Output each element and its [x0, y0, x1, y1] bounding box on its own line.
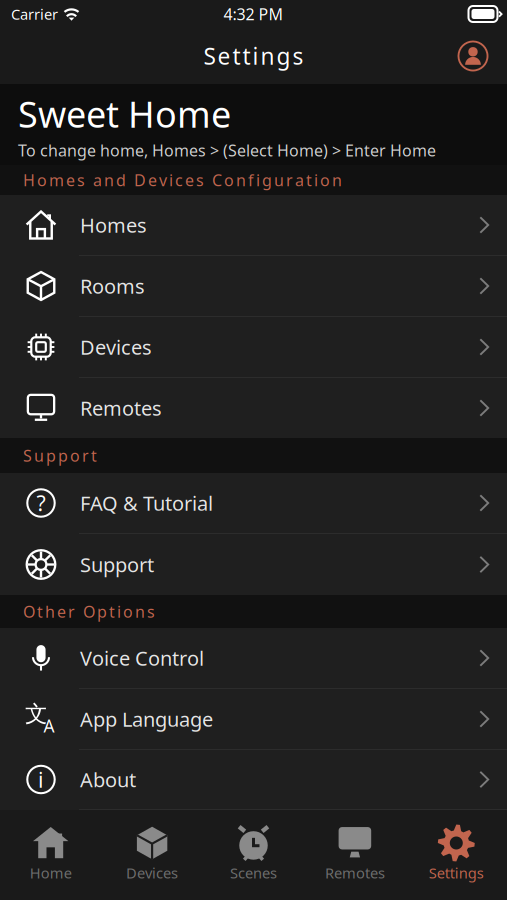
- button[interactable]: Homes: [0, 195, 507, 255]
- staticText: S u p p o r t: [23, 445, 97, 466]
- button[interactable]: Account: [458, 41, 488, 71]
- button[interactable]: Settings: [406, 810, 507, 900]
- staticText: A: [43, 714, 54, 737]
- staticText: Devices: [80, 334, 152, 360]
- button[interactable]: Home: [0, 810, 101, 900]
- button[interactable]: ?: [0, 473, 507, 533]
- staticText: S e t t i n g s: [203, 41, 303, 71]
- button[interactable]: Remotes: [304, 810, 406, 900]
- staticText: 文: [25, 700, 48, 728]
- staticText: App Language: [80, 706, 213, 732]
- staticText: Remotes: [80, 395, 162, 421]
- button[interactable]: Remotes: [0, 378, 507, 438]
- button[interactable]: Devices: [0, 317, 507, 377]
- staticText: H o m e s a n d D e v i c e s C o n f i …: [23, 169, 342, 191]
- staticText: Rooms: [80, 273, 145, 299]
- button[interactable]: 文: [0, 689, 507, 749]
- staticText: Home: [30, 863, 72, 882]
- button[interactable]: Devices: [101, 810, 203, 900]
- staticText: 4:32 PM: [223, 3, 283, 25]
- staticText: O t h e r O p t i o n s: [23, 601, 155, 622]
- button[interactable]: Rooms: [0, 256, 507, 316]
- button[interactable]: Voice Control: [0, 628, 507, 688]
- staticText: Homes: [80, 212, 147, 238]
- staticText: Scenes: [230, 863, 277, 882]
- staticText: FAQ & Tutorial: [80, 490, 213, 516]
- button[interactable]: Scenes: [203, 810, 304, 900]
- button[interactable]: i: [0, 750, 507, 809]
- staticText: To change home, Homes > (Select Home) > …: [18, 140, 436, 161]
- staticText: Settings: [429, 863, 484, 882]
- staticText: Remotes: [325, 863, 385, 882]
- button[interactable]: Support: [0, 534, 507, 595]
- staticText: i: [38, 765, 44, 794]
- staticText: Voice Control: [80, 645, 204, 671]
- staticText: Devices: [126, 863, 178, 882]
- staticText: ?: [36, 489, 45, 517]
- staticText: About: [80, 766, 136, 793]
- staticText: Carrier: [11, 4, 58, 24]
- staticText: Sweet Home: [18, 90, 231, 138]
- staticText: Support: [80, 551, 154, 578]
